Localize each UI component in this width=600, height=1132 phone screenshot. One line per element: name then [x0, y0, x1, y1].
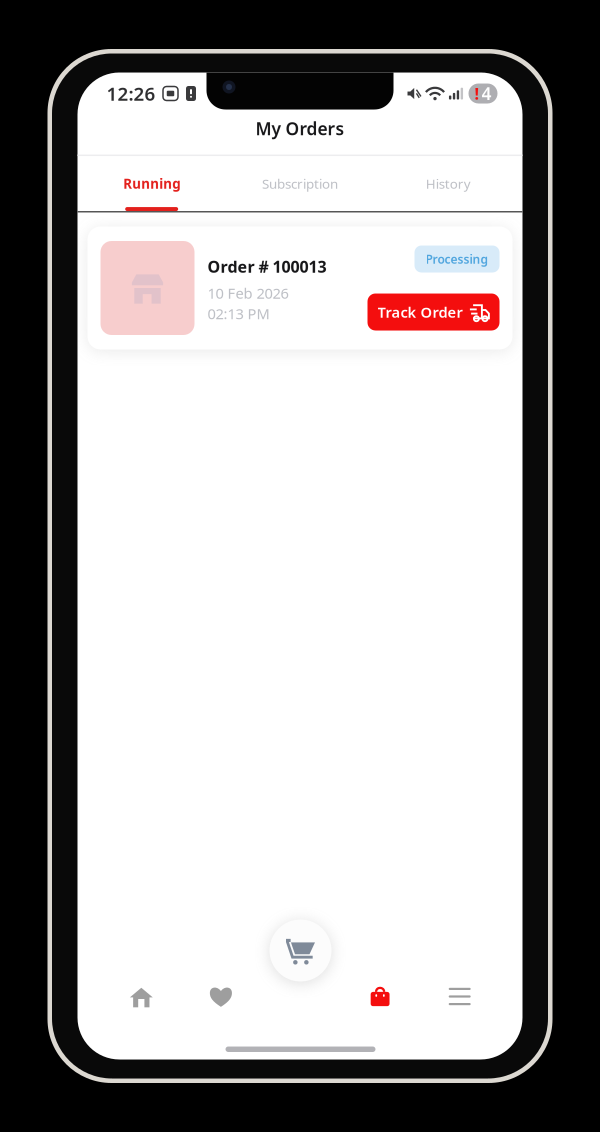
staticText: History [426, 175, 471, 192]
button[interactable]: Subscription [226, 156, 374, 211]
staticText: Processing [425, 251, 488, 267]
staticText: 12:26 [106, 81, 155, 106]
staticText: ! [474, 83, 479, 104]
staticText: Subscription [262, 175, 338, 192]
staticText: Order # 100013 [207, 256, 326, 277]
button[interactable]: Favorites [181, 970, 261, 1022]
button[interactable]: Menu [420, 970, 499, 1022]
button[interactable]: History [374, 156, 522, 211]
staticText: My Orders [255, 117, 344, 140]
staticText: 4 [481, 82, 491, 105]
staticText: 02:13 PM [207, 304, 269, 323]
staticText: 10 Feb 2026 [207, 283, 288, 303]
button[interactable]: Running [77, 156, 226, 211]
staticText: Track Order [377, 302, 462, 322]
staticText: Running [123, 175, 180, 192]
button[interactable]: Home [101, 970, 181, 1022]
button[interactable]: Track Order [367, 293, 499, 330]
button[interactable]: Orders [340, 970, 420, 1022]
